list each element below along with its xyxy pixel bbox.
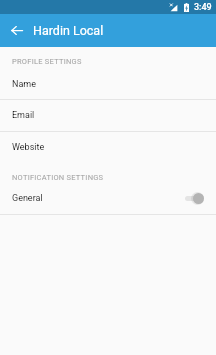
staticText: Email (12, 110, 35, 121)
staticText: Website (12, 142, 45, 153)
button[interactable]: Website (0, 132, 216, 163)
button[interactable]: Email (0, 100, 216, 131)
button[interactable]: Name (0, 69, 216, 100)
staticText: Name (12, 79, 36, 90)
button[interactable]: General notifications toggle (185, 192, 204, 205)
staticText: Hardin Local (33, 23, 104, 38)
button[interactable]: Back (0, 14, 33, 47)
staticText: PROFILE SETTINGS (12, 57, 82, 66)
staticText: NOTIFICATION SETTINGS (12, 173, 104, 182)
staticText: 3:49 (194, 2, 212, 13)
button[interactable]: General (0, 182, 216, 214)
staticText: General (12, 193, 185, 204)
